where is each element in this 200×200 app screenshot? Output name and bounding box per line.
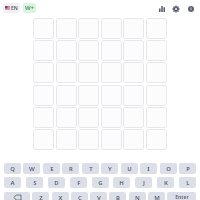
button[interactable]: Info [185,3,196,14]
staticText: W [29,165,35,173]
staticText: Y [108,165,112,173]
button[interactable]: Q [4,163,21,174]
staticText: X [58,194,63,200]
staticText: D [54,179,59,187]
staticText: Z [39,194,43,200]
staticText: V [97,194,101,200]
button[interactable]: Y [101,163,118,174]
staticText: F [77,179,81,187]
staticText: S [33,179,37,187]
staticText: T [89,165,93,173]
button[interactable]: N [129,192,146,200]
staticText: W+ [25,4,35,12]
button[interactable]: Statistics [156,3,167,14]
button[interactable]: Z [32,192,49,200]
button[interactable]: R [62,163,79,174]
button[interactable]: Backspace [4,192,30,200]
staticText: E [50,165,54,173]
button[interactable]: Settings [170,3,181,14]
staticText: I [147,165,150,173]
button[interactable]: C [71,192,88,200]
staticText: A [10,179,15,187]
button[interactable]: B [109,192,126,200]
button[interactable]: S [26,177,43,188]
staticText: R [69,165,73,173]
button[interactable]: K [157,177,174,188]
staticText: Q [10,165,15,173]
staticText: G [98,179,103,187]
button[interactable]: Enter [167,192,196,200]
staticText: M [154,194,160,200]
staticText: H [119,179,124,187]
button[interactable]: E [43,163,60,174]
staticText: L [186,179,190,187]
staticText: P [186,165,190,173]
staticText: O [166,165,171,173]
button[interactable]: G [92,177,109,188]
button[interactable]: D [48,177,65,188]
button[interactable]: H [113,177,130,188]
button[interactable]: O [160,163,177,174]
button[interactable]: X [52,192,69,200]
button[interactable]: I [140,163,157,174]
staticText: N [135,194,140,200]
staticText: C [78,194,82,200]
button[interactable]: W+ [23,3,36,13]
button[interactable]: T [82,163,99,174]
button[interactable]: F [70,177,87,188]
staticText: EN [11,5,18,12]
button[interactable]: A [4,177,21,188]
button[interactable]: EN [3,3,20,13]
button[interactable]: W [23,163,40,174]
button[interactable]: V [90,192,107,200]
button[interactable]: M [148,192,165,200]
button[interactable]: L [179,177,196,188]
staticText: B [116,194,120,200]
staticText: J [143,179,145,187]
button[interactable]: U [121,163,138,174]
staticText: U [127,165,132,173]
button[interactable]: J [135,177,152,188]
staticText: Enter [175,194,189,200]
button[interactable]: P [179,163,196,174]
staticText: K [164,179,168,187]
